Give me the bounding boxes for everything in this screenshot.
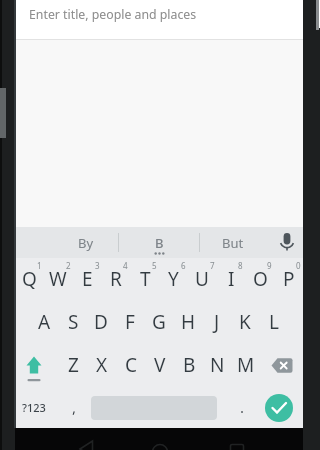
- staticText: H: [181, 309, 196, 335]
- button[interactable]: T: [131, 258, 159, 300]
- button[interactable]: O: [246, 258, 274, 300]
- staticText: P: [283, 266, 295, 292]
- button[interactable]: E: [73, 258, 101, 300]
- button[interactable]: P: [275, 258, 303, 300]
- button[interactable]: L: [260, 301, 288, 343]
- button[interactable]: J: [203, 301, 231, 343]
- button[interactable]: Z: [59, 344, 87, 386]
- button[interactable]: B: [143, 227, 175, 258]
- button[interactable]: W: [44, 258, 72, 300]
- button[interactable]: Q: [15, 258, 43, 300]
- staticText: B: [183, 352, 196, 378]
- staticText: 5: [152, 260, 157, 271]
- button[interactable]: D: [87, 301, 115, 343]
- button[interactable]: [70, 430, 110, 450]
- staticText: 9: [267, 260, 272, 271]
- staticText: C: [125, 352, 138, 378]
- staticText: S: [68, 309, 79, 335]
- button[interactable]: K: [231, 301, 259, 343]
- staticText: Y: [168, 266, 179, 292]
- button[interactable]: ,: [62, 386, 86, 428]
- staticText: 0: [296, 260, 301, 271]
- staticText: O: [253, 266, 268, 292]
- button[interactable]: B: [175, 344, 203, 386]
- staticText: W: [49, 266, 67, 292]
- staticText: 7: [210, 260, 215, 271]
- button[interactable]: C: [117, 344, 145, 386]
- staticText: I: [228, 266, 235, 292]
- staticText: N: [210, 352, 225, 378]
- staticText: X: [96, 352, 108, 378]
- button[interactable]: U: [188, 258, 216, 300]
- staticText: F: [125, 309, 135, 335]
- button[interactable]: .: [230, 386, 254, 428]
- button[interactable]: Y: [159, 258, 187, 300]
- staticText: K: [239, 309, 251, 335]
- staticText: Z: [68, 352, 79, 378]
- staticText: 4: [123, 260, 128, 271]
- button[interactable]: F: [116, 301, 144, 343]
- staticText: .: [240, 397, 245, 417]
- staticText: B: [155, 234, 164, 252]
- button[interactable]: A: [30, 301, 58, 343]
- button[interactable]: But: [217, 227, 249, 258]
- staticText: 8: [238, 260, 243, 271]
- button[interactable]: ?123: [19, 386, 49, 428]
- button[interactable]: I: [217, 258, 245, 300]
- staticText: ?123: [22, 400, 46, 415]
- button[interactable]: G: [145, 301, 173, 343]
- button[interactable]: [268, 344, 300, 386]
- button[interactable]: [140, 430, 180, 450]
- staticText: By: [78, 234, 94, 252]
- button[interactable]: [19, 344, 49, 386]
- button[interactable]: By: [70, 227, 102, 258]
- staticText: M: [237, 352, 255, 378]
- staticText: A: [38, 309, 51, 335]
- button[interactable]: V: [146, 344, 174, 386]
- staticText: L: [269, 309, 279, 335]
- staticText: R: [110, 266, 122, 292]
- staticText: E: [82, 266, 93, 292]
- button[interactable]: [15, 0, 303, 40]
- staticText: D: [94, 309, 108, 335]
- button[interactable]: N: [203, 344, 231, 386]
- staticText: 6: [181, 260, 186, 271]
- button[interactable]: M: [232, 344, 260, 386]
- staticText: V: [154, 352, 166, 378]
- staticText: U: [195, 266, 209, 292]
- staticText: G: [152, 309, 166, 335]
- staticText: 3: [95, 260, 100, 271]
- button[interactable]: [215, 430, 255, 450]
- staticText: 1: [37, 260, 42, 271]
- staticText: T: [140, 266, 151, 292]
- staticText: 2: [66, 260, 71, 271]
- button[interactable]: H: [174, 301, 202, 343]
- staticText: ,: [72, 397, 77, 417]
- staticText: J: [214, 309, 220, 335]
- button[interactable]: R: [102, 258, 130, 300]
- button[interactable]: S: [59, 301, 87, 343]
- button[interactable]: X: [88, 344, 116, 386]
- staticText: But: [222, 234, 244, 252]
- button[interactable]: [265, 394, 293, 422]
- staticText: Q: [22, 266, 37, 292]
- staticText: Enter title, people and places: [29, 6, 197, 23]
